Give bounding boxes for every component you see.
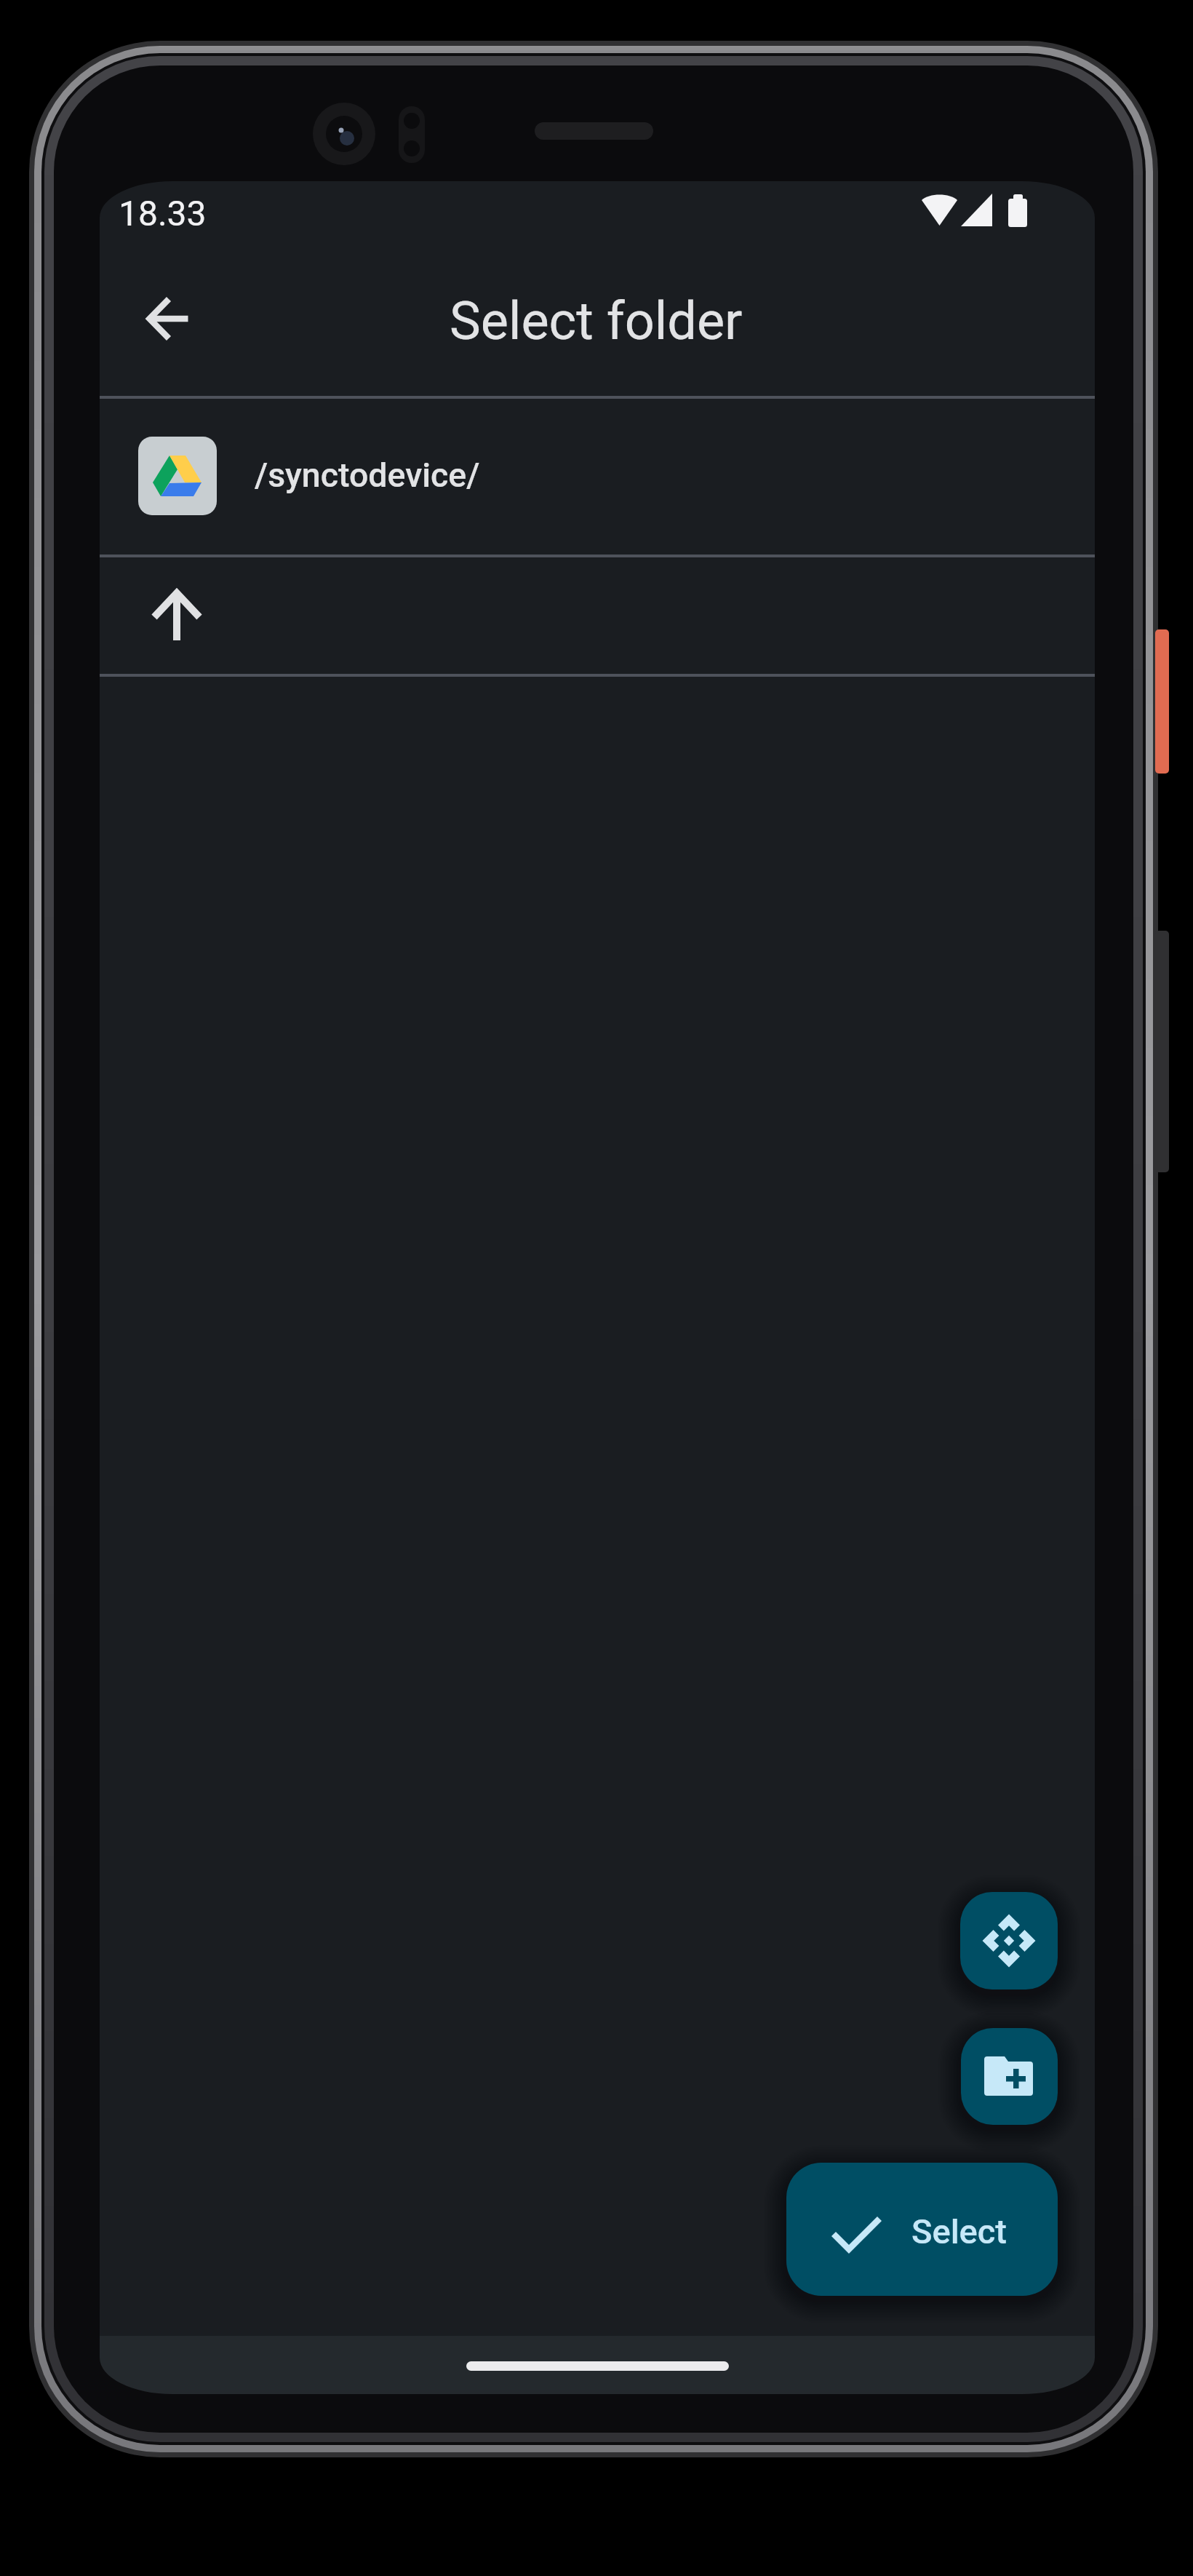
button[interactable]: Move — [960, 1892, 1058, 1989]
staticText: 18.33 — [119, 193, 207, 234]
staticText: /synctodevice/ — [255, 456, 480, 495]
button[interactable]: Navigate up — [125, 275, 212, 362]
button[interactable]: /synctodevice/ — [100, 397, 1095, 554]
button[interactable]: Go up one folder — [100, 556, 1095, 674]
staticText: Select folder — [450, 290, 743, 351]
button[interactable]: Create new folder — [961, 2028, 1058, 2125]
staticText: Select — [911, 2211, 1007, 2251]
button[interactable]: Select — [786, 2163, 1058, 2296]
